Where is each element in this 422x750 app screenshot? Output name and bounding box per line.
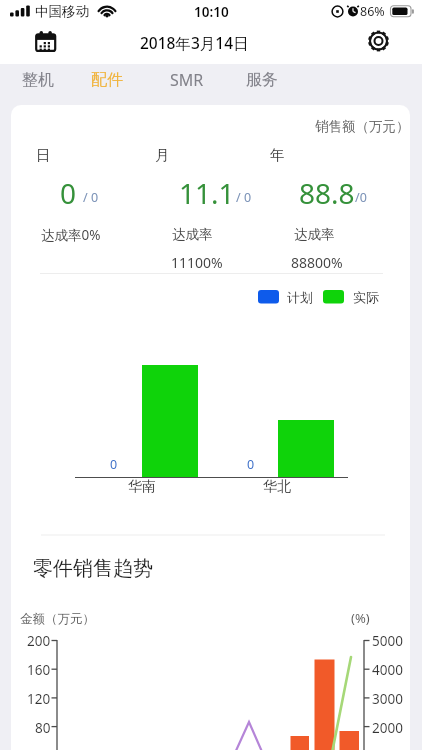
staticText: 2018年3月14日 xyxy=(140,32,249,52)
staticText: 月 xyxy=(155,146,170,164)
staticText: 实际 xyxy=(353,289,379,305)
staticText: 日 xyxy=(36,146,51,164)
staticText: 年 xyxy=(270,146,285,164)
staticText: 计划 xyxy=(287,289,313,305)
staticText: 达成率 xyxy=(172,226,213,243)
staticText: 整机 xyxy=(22,70,54,90)
staticText: 2000 xyxy=(372,719,403,736)
staticText: 0 xyxy=(247,456,255,471)
staticText: 3000 xyxy=(372,690,403,707)
staticText: 10:10 xyxy=(194,3,229,20)
staticText: / 0 xyxy=(83,189,99,205)
button[interactable] xyxy=(24,26,56,58)
staticText: 0 xyxy=(110,456,118,471)
staticText: 达成率0% xyxy=(41,226,101,243)
staticText: (%) xyxy=(351,609,370,625)
staticText: 中国移动 xyxy=(35,3,89,20)
staticText: / 0 xyxy=(236,189,252,205)
staticText: 120 xyxy=(27,690,51,707)
staticText: SMR xyxy=(170,69,204,91)
staticText: 86% xyxy=(360,3,385,20)
staticText: 80 xyxy=(35,719,51,736)
staticText: 销售额（万元） xyxy=(315,118,410,135)
staticText: 88800% xyxy=(291,253,343,270)
staticText: 华南 xyxy=(128,478,156,495)
staticText: 200 xyxy=(27,632,51,649)
staticText: 160 xyxy=(27,661,51,678)
button[interactable]: 配件 xyxy=(79,64,135,96)
staticText: 达成率 xyxy=(294,226,335,243)
staticText: /0 xyxy=(355,189,367,205)
button[interactable]: 服务 xyxy=(234,64,290,96)
staticText: 华北 xyxy=(263,478,291,495)
staticText: 金额（万元） xyxy=(20,611,95,627)
staticText: 0 xyxy=(60,174,77,208)
staticText: 服务 xyxy=(246,70,278,90)
staticText: 5000 xyxy=(372,632,403,649)
staticText: 11100% xyxy=(171,253,223,270)
staticText: 11.1 xyxy=(179,174,235,208)
staticText: 88.8 xyxy=(299,174,355,208)
button[interactable] xyxy=(361,26,393,58)
button[interactable]: SMR xyxy=(158,64,216,96)
staticText: 4000 xyxy=(372,661,403,678)
button[interactable]: 整机 xyxy=(10,64,66,96)
staticText: 零件销售趋势 xyxy=(33,556,153,581)
staticText: 配件 xyxy=(91,70,123,90)
